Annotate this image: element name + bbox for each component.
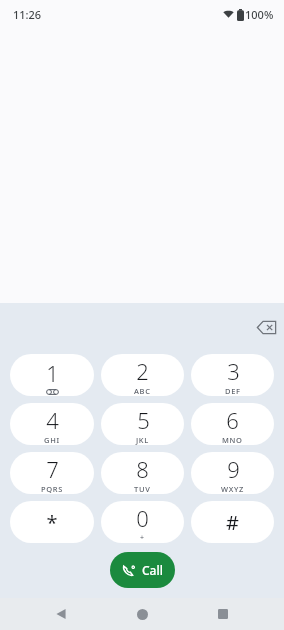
staticText: 11:26 bbox=[13, 7, 42, 22]
staticText: DEF bbox=[225, 386, 241, 396]
button[interactable]: 0 bbox=[101, 501, 184, 543]
button[interactable]: Back bbox=[41, 598, 81, 630]
staticText: # bbox=[226, 509, 239, 536]
button[interactable]: * bbox=[10, 501, 94, 543]
button[interactable]: Home bbox=[122, 598, 162, 630]
button[interactable]: 6 bbox=[191, 403, 274, 445]
button[interactable]: Backspace bbox=[248, 309, 284, 345]
staticText: MNO bbox=[222, 435, 243, 445]
button[interactable]: 2 bbox=[101, 354, 184, 396]
button[interactable]: 5 bbox=[101, 403, 184, 445]
staticText: TUV bbox=[134, 484, 151, 494]
button[interactable]: 3 bbox=[191, 354, 274, 396]
staticText: 0 bbox=[136, 503, 149, 533]
staticText: 6 bbox=[226, 405, 239, 435]
staticText: 7 bbox=[46, 454, 59, 484]
staticText: 9 bbox=[227, 454, 240, 484]
staticText: WXYZ bbox=[221, 484, 245, 494]
staticText: 2 bbox=[136, 356, 149, 386]
staticText: ABC bbox=[134, 386, 151, 396]
button[interactable]: Recent apps bbox=[203, 598, 243, 630]
staticText: * bbox=[46, 509, 58, 536]
staticText: 1 bbox=[46, 358, 59, 388]
staticText: JKL bbox=[136, 435, 150, 445]
staticText: 4 bbox=[46, 405, 59, 435]
staticText: PQRS bbox=[41, 484, 64, 494]
button[interactable]: 9 bbox=[191, 452, 274, 494]
staticText: 5 bbox=[137, 405, 150, 435]
staticText: 8 bbox=[136, 454, 149, 484]
button[interactable]: Call bbox=[110, 552, 175, 588]
button[interactable]: 4 bbox=[10, 403, 94, 445]
button[interactable]: 8 bbox=[101, 452, 184, 494]
button[interactable]: 1 bbox=[10, 354, 94, 396]
staticText: GHI bbox=[44, 435, 60, 445]
button[interactable]: 7 bbox=[10, 452, 94, 494]
staticText: Call bbox=[142, 562, 163, 578]
staticText: 100% bbox=[245, 7, 274, 22]
staticText: 3 bbox=[227, 356, 240, 386]
staticText: + bbox=[140, 533, 145, 543]
button[interactable]: # bbox=[191, 501, 274, 543]
